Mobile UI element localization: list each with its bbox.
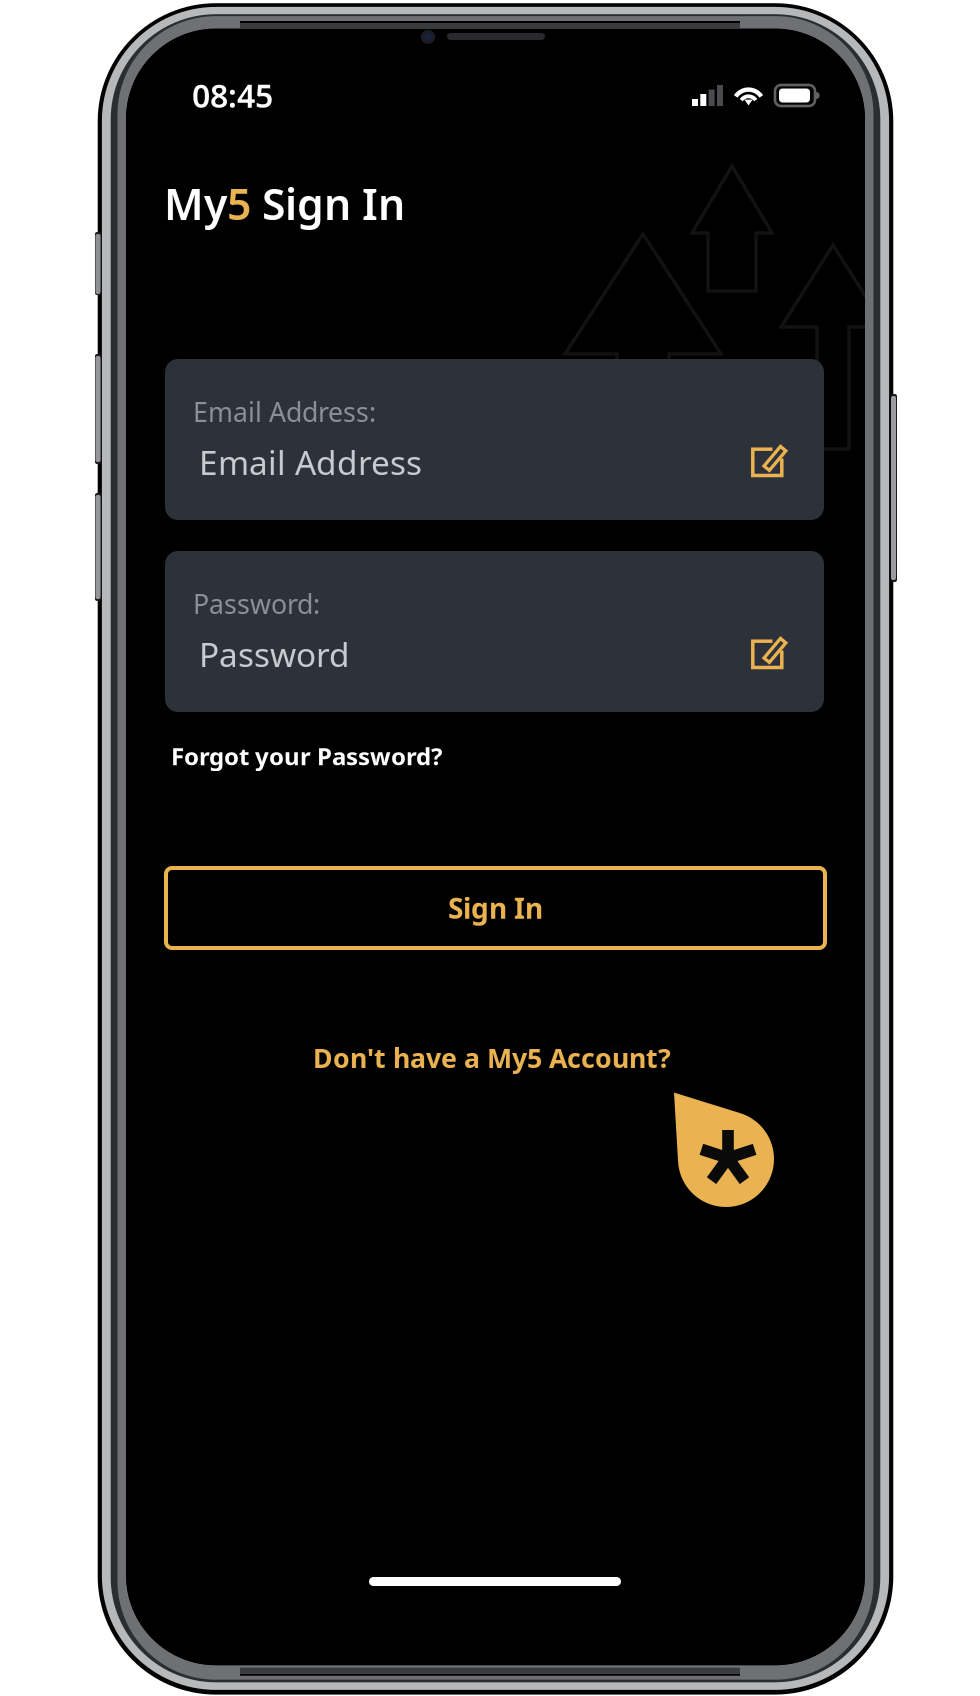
staticText: Password:	[193, 586, 320, 621]
button[interactable]: Don't have a My5 Account?	[313, 1034, 671, 1081]
button[interactable]: Sign In	[166, 868, 825, 948]
staticText: Forgot your Password?	[171, 740, 442, 772]
button[interactable]: Edit password	[742, 626, 798, 680]
staticText: Password	[199, 632, 350, 676]
staticText: 5	[227, 175, 251, 232]
staticText: Don't have a My5 Account?	[313, 1040, 671, 1075]
staticText: My	[164, 175, 227, 232]
staticText: Email Address	[199, 440, 422, 484]
staticText: Sign In	[251, 175, 405, 232]
staticText: Email Address:	[193, 394, 376, 429]
button[interactable]: Email Address:	[165, 359, 824, 520]
button[interactable]: Edit email address	[742, 434, 798, 488]
button[interactable]: Password:	[165, 551, 824, 712]
staticText: Sign In	[448, 889, 543, 927]
button[interactable]: Forgot your Password?	[171, 734, 442, 778]
staticText: 08:45	[192, 74, 273, 116]
